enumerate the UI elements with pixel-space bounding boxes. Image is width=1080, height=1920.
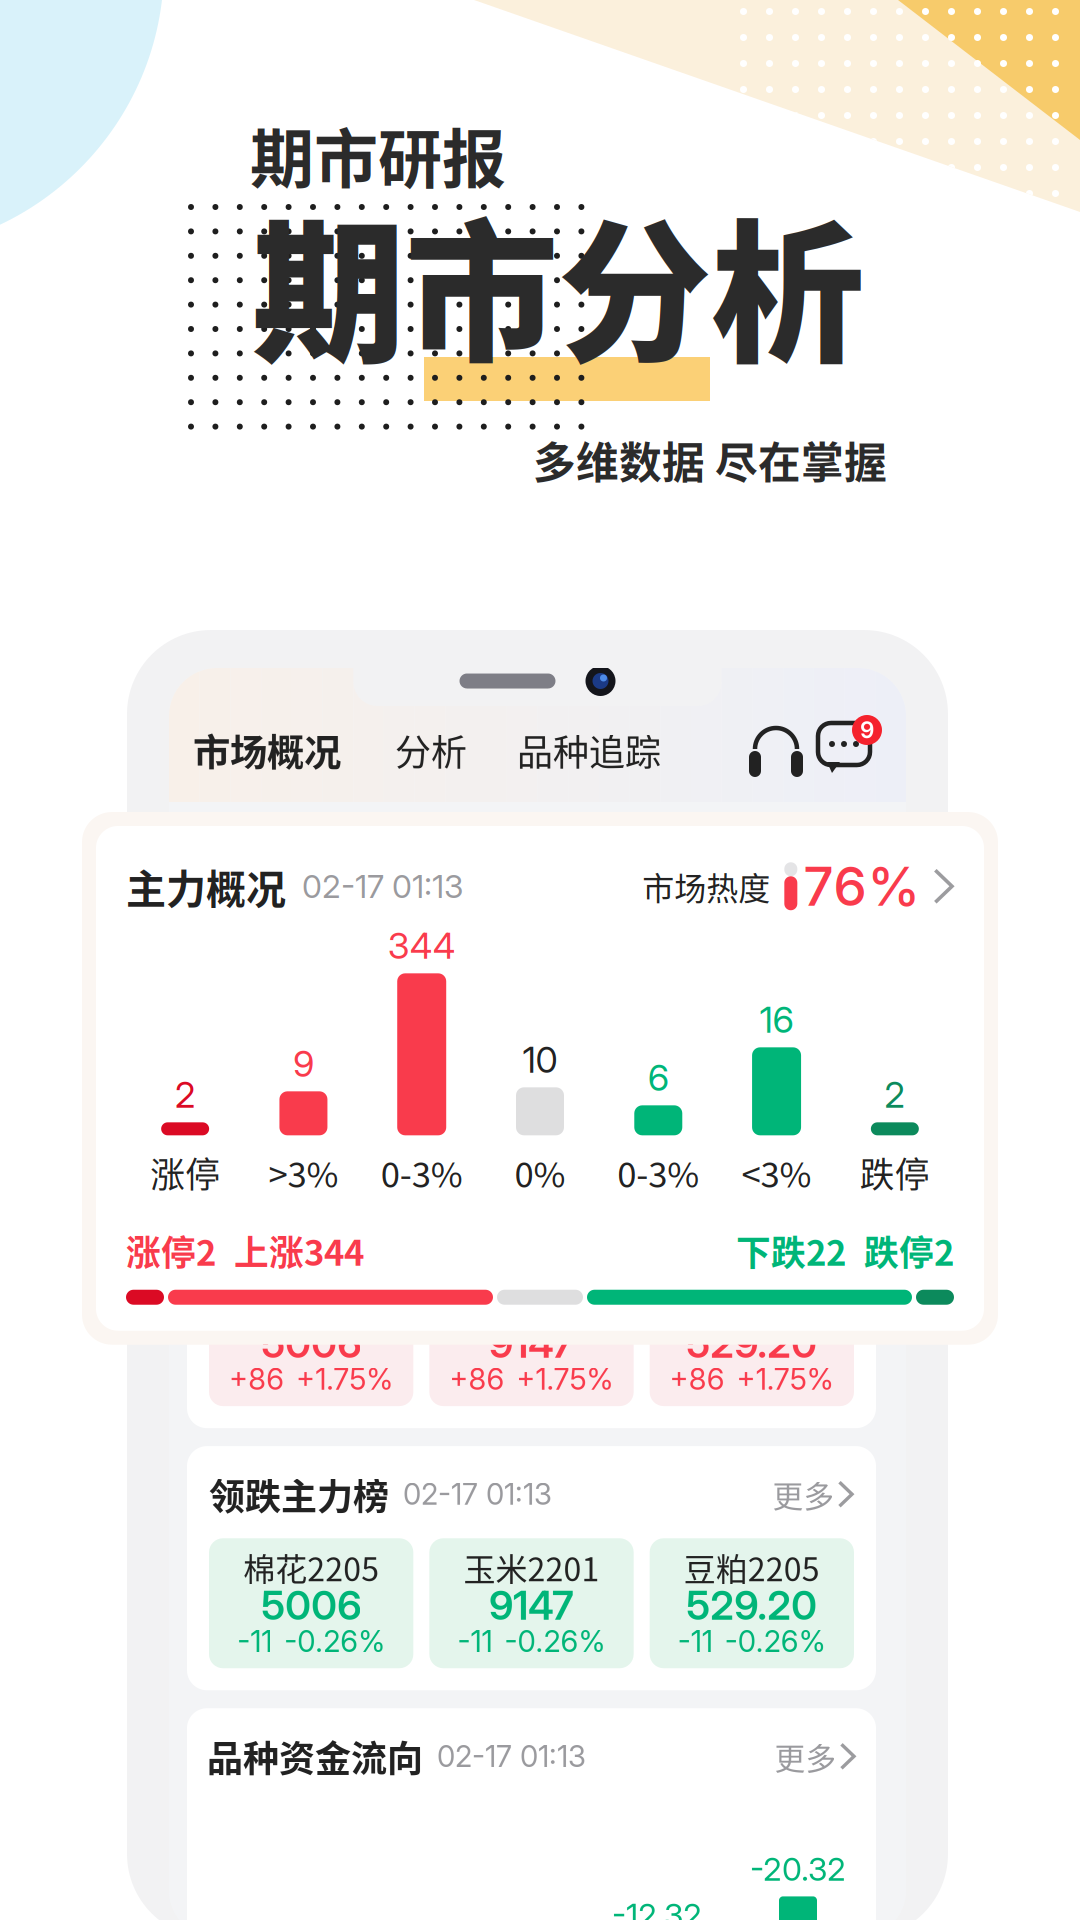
staticText: 主力概况	[126, 857, 286, 915]
staticText: 529.20	[686, 1581, 817, 1629]
staticText: -0.26%	[725, 1623, 826, 1659]
staticText: 多维数据 尽在掌握	[533, 429, 887, 491]
staticText: -11	[678, 1623, 713, 1659]
staticText: 10	[522, 1038, 557, 1081]
staticText: 2	[175, 1073, 196, 1116]
staticText: -20.32	[750, 1850, 846, 1888]
staticText: 期市研报	[250, 108, 506, 201]
staticText: >3%	[268, 1147, 338, 1197]
staticText: 玉米2201	[463, 1544, 599, 1590]
staticText: 涨停	[150, 1147, 220, 1197]
staticText: 下跌22	[736, 1225, 846, 1276]
staticText: +1.75%	[737, 1361, 834, 1397]
button[interactable]: 市场概况	[193, 723, 341, 777]
staticText: 6	[648, 1056, 669, 1099]
staticText: 9147	[489, 1319, 574, 1367]
button[interactable]: 分析	[395, 724, 467, 776]
button[interactable]: 更多	[772, 1472, 854, 1516]
button[interactable]: 品种追踪	[517, 724, 661, 776]
staticText: -12.32	[612, 1896, 702, 1920]
staticText: 分析	[395, 724, 467, 776]
staticText: 更多	[774, 1734, 836, 1778]
staticText: +86	[229, 1361, 284, 1397]
staticText: 跌停	[860, 1147, 930, 1197]
staticText: 5006	[261, 1319, 361, 1367]
staticText: 期市分析	[252, 172, 864, 394]
staticText: 9147	[489, 1581, 574, 1629]
staticText: 02-17 01:13	[437, 1739, 586, 1774]
staticText: 02-17 01:13	[302, 867, 463, 906]
staticText: +1.75%	[516, 1361, 613, 1397]
staticText: 玉米2201	[463, 1282, 599, 1328]
staticText: 16	[760, 998, 794, 1041]
button[interactable]: 客服	[748, 723, 804, 777]
staticText: 棉花2205	[243, 1544, 379, 1590]
staticText: 领跌主力榜	[209, 1468, 389, 1520]
staticText: 豆粕2205	[684, 1282, 820, 1328]
staticText: 品种追踪	[517, 724, 661, 776]
staticText: 76%	[803, 854, 920, 918]
staticText: <3%	[742, 1147, 812, 1197]
button[interactable]: 更多	[772, 1210, 854, 1254]
staticText: 上涨344	[234, 1225, 364, 1276]
staticText: 更多	[772, 1472, 834, 1516]
button[interactable]: 消息	[818, 723, 882, 777]
staticText: 9	[860, 716, 874, 744]
staticText: 5006	[261, 1581, 361, 1629]
staticText: -11	[237, 1623, 272, 1659]
staticText: 市场概况	[193, 723, 341, 777]
staticText: 品种资金流向	[207, 1730, 423, 1782]
staticText: 529.20	[686, 1319, 817, 1367]
staticText: -11	[457, 1623, 492, 1659]
staticText: 跌停2	[864, 1225, 954, 1276]
staticText: 0%	[514, 1147, 565, 1197]
staticText: +86	[449, 1361, 504, 1397]
staticText: 02-17 01:13	[403, 1476, 552, 1512]
staticText: 更多	[772, 1210, 834, 1254]
staticText: 0-3%	[381, 1147, 463, 1197]
staticText: 领涨主力榜	[209, 1206, 389, 1258]
staticText: 豆粕2205	[684, 1544, 820, 1590]
staticText: 9	[293, 1042, 314, 1085]
staticText: +86	[670, 1361, 725, 1397]
staticText: 涨停2	[126, 1225, 216, 1276]
staticText: +1.75%	[296, 1361, 393, 1397]
staticText: -0.26%	[504, 1623, 605, 1659]
button[interactable]: 更多	[774, 1734, 856, 1778]
staticText: 344	[388, 924, 456, 967]
staticText: 棉花2205	[243, 1282, 379, 1328]
staticText: 2	[884, 1073, 905, 1116]
staticText: 市场热度	[642, 863, 770, 909]
staticText: -0.26%	[284, 1623, 385, 1659]
staticText: 0-3%	[617, 1147, 699, 1197]
